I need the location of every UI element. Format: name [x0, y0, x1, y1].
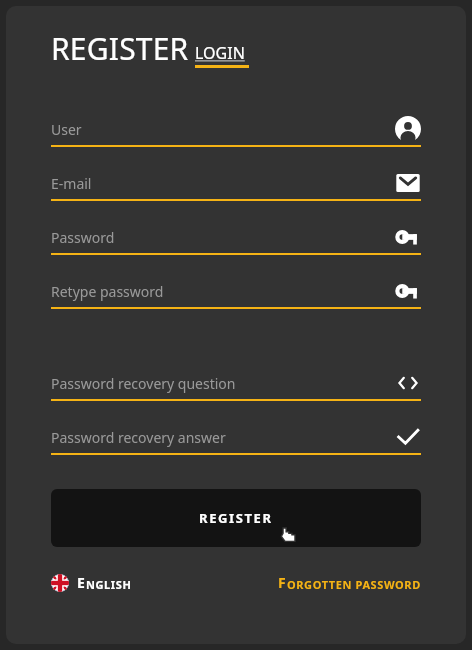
button[interactable]: User	[51, 113, 421, 147]
button[interactable]: E-mail	[51, 167, 421, 201]
other: Password	[395, 278, 421, 304]
staticText: ORGOTTEN PASSWORD	[287, 577, 421, 592]
staticText: User	[51, 120, 82, 139]
staticText: E	[77, 573, 86, 592]
staticText: Retype password	[51, 282, 164, 301]
other: User	[395, 116, 421, 142]
button[interactable]: Password	[51, 221, 421, 255]
staticText: F	[278, 573, 287, 592]
other: English	[51, 574, 69, 592]
staticText: LOGIN	[195, 42, 245, 64]
button[interactable]: Retype password	[51, 275, 421, 309]
button[interactable]: REGISTER	[51, 28, 189, 69]
button[interactable]: Password recovery answer	[51, 421, 421, 455]
button[interactable]: English	[51, 573, 132, 592]
staticText: Password recovery question	[51, 374, 236, 393]
staticText: REGISTER	[199, 509, 273, 527]
other: Select recovery question	[395, 370, 421, 396]
other: Confirm	[395, 424, 421, 450]
button[interactable]: LOGIN	[195, 42, 249, 64]
other: Password	[395, 224, 421, 250]
staticText: E-mail	[51, 174, 92, 193]
staticText: REGISTER	[51, 28, 189, 69]
button[interactable]: REGISTER	[51, 489, 421, 547]
button[interactable]: F	[278, 573, 421, 592]
other: E-mail	[395, 170, 421, 196]
staticText: Password recovery answer	[51, 428, 226, 447]
button[interactable]: Password recovery question	[51, 367, 421, 401]
staticText: NGLISH	[86, 577, 132, 592]
other: Pointer	[280, 525, 297, 544]
staticText: Password	[51, 228, 115, 247]
